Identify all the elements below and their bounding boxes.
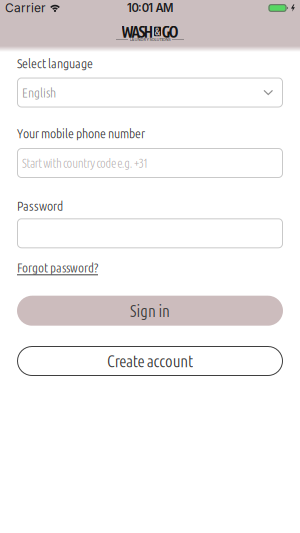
staticText: & bbox=[154, 25, 160, 37]
button[interactable]: Forgot password? bbox=[17, 260, 98, 275]
staticText: Forgot password? bbox=[17, 260, 98, 275]
button[interactable]: Your mobile phone number bbox=[17, 148, 283, 178]
button[interactable]: English bbox=[17, 77, 283, 107]
staticText: Create account bbox=[107, 352, 193, 370]
button[interactable]: Sign in bbox=[17, 296, 283, 326]
button[interactable]: Password bbox=[17, 218, 283, 248]
staticText: Carrier bbox=[5, 1, 46, 15]
staticText: Password bbox=[17, 199, 63, 213]
staticText: GO bbox=[161, 22, 178, 41]
staticText: Your mobile phone number bbox=[17, 127, 145, 140]
staticText: LAUNDRY SOLUTIONS bbox=[129, 37, 170, 42]
staticText: Select language bbox=[17, 57, 93, 70]
staticText: Sign in bbox=[130, 301, 170, 320]
staticText: English bbox=[22, 85, 56, 100]
staticText: Start with country code e.g. +31 bbox=[22, 156, 148, 170]
staticText: WASH bbox=[121, 22, 153, 41]
button[interactable]: Create account bbox=[17, 346, 283, 376]
staticText: 10:01 AM bbox=[127, 1, 173, 15]
